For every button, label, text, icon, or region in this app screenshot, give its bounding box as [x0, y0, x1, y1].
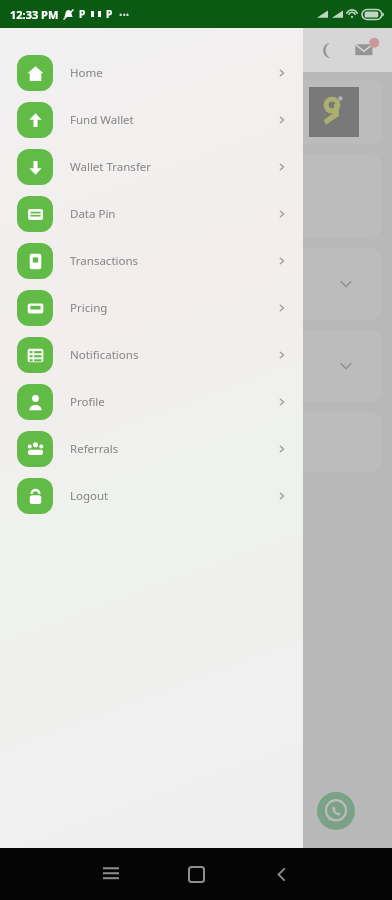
button[interactable]: Recents: [91, 854, 131, 894]
staticText: Fund Wallet: [70, 112, 277, 128]
button[interactable]: Data Pin: [0, 190, 303, 237]
button[interactable]: Wallet Transfer: [0, 143, 303, 190]
staticText: 12:33 PM: [10, 7, 59, 22]
button[interactable]: [10, 248, 382, 320]
staticText: Referrals: [70, 441, 277, 457]
button[interactable]: Profile: [0, 378, 303, 425]
staticText: Home: [70, 65, 277, 81]
staticText: P: [106, 7, 113, 21]
button[interactable]: Messages: [354, 37, 380, 63]
button[interactable]: Home: [0, 49, 303, 96]
button[interactable]: Notifications: [0, 331, 303, 378]
button[interactable]: Referrals: [0, 425, 303, 472]
button[interactable]: Dark mode: [314, 39, 336, 61]
staticText: Notifications: [70, 347, 277, 363]
button[interactable]: Back: [261, 854, 301, 894]
staticText: •••: [119, 8, 130, 20]
button[interactable]: Transactions: [0, 237, 303, 284]
staticText: Data Pin: [70, 206, 277, 222]
staticText: Wallet Transfer: [70, 159, 277, 175]
button[interactable]: Home: [176, 854, 216, 894]
button[interactable]: Pricing: [0, 284, 303, 331]
button[interactable]: [10, 80, 382, 144]
staticText: Logout: [70, 488, 277, 504]
button[interactable]: Fund Wallet: [0, 96, 303, 143]
button[interactable]: [10, 154, 382, 238]
staticText: Transactions: [70, 253, 277, 269]
button[interactable]: [10, 330, 382, 402]
staticText: Pricing: [70, 300, 277, 316]
staticText: Profile: [70, 394, 277, 410]
button[interactable]: Chat on WhatsApp: [317, 792, 355, 830]
staticText: P: [79, 7, 86, 21]
button[interactable]: Logout: [0, 472, 303, 519]
